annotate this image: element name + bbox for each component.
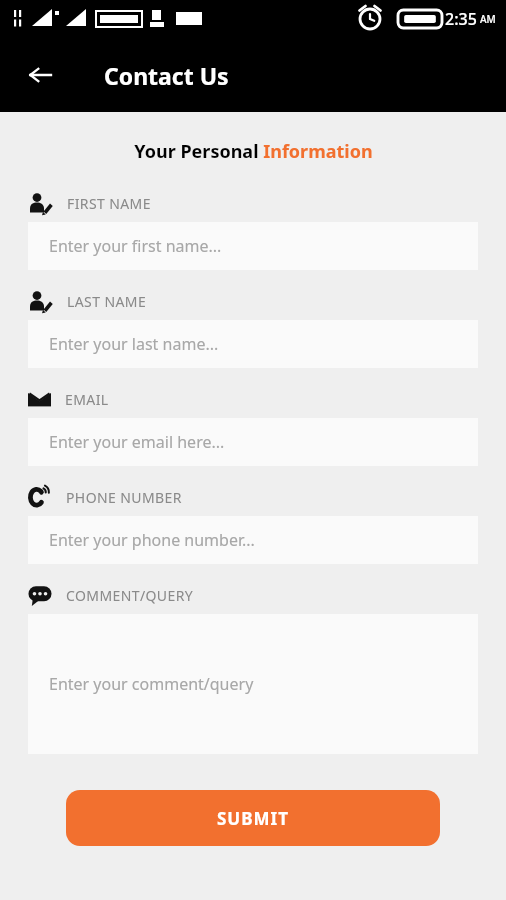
staticText: SUBMIT (217, 807, 289, 830)
staticText: Contact Us (104, 60, 229, 91)
button[interactable]: Enter your last name... (28, 320, 478, 368)
staticText: Enter your phone number... (49, 529, 255, 551)
staticText: AM (480, 12, 496, 26)
staticText: 2:35 (445, 8, 477, 30)
staticText: EMAIL (65, 390, 109, 409)
staticText: COMMENT/QUERY (66, 586, 194, 605)
staticText: Enter your comment/query (49, 673, 254, 695)
button[interactable]: SUBMIT (66, 790, 440, 846)
button[interactable]: Enter your email here... (28, 418, 478, 466)
button[interactable]: Enter your phone number... (28, 516, 478, 564)
staticText: Enter your last name... (49, 333, 219, 355)
staticText: Enter your email here... (49, 431, 225, 453)
staticText: LAST NAME (67, 292, 147, 311)
staticText: Your Personal Information (134, 139, 373, 164)
button[interactable]: Enter your comment/query (28, 614, 478, 754)
button[interactable]: Back (18, 53, 62, 97)
button[interactable]: Enter your first name... (28, 222, 478, 270)
staticText: PHONE NUMBER (66, 488, 182, 507)
staticText: FIRST NAME (67, 194, 151, 213)
staticText: Enter your first name... (49, 235, 222, 257)
